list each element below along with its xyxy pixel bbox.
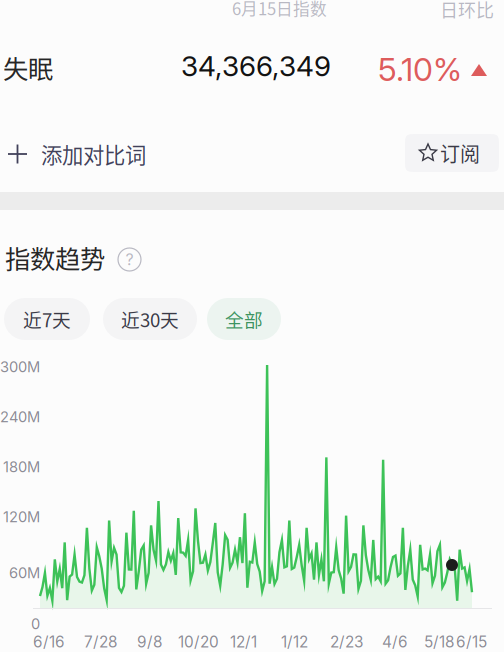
- staticText: 2/23: [330, 633, 363, 651]
- staticText: 180M: [3, 458, 40, 476]
- staticText: 4/6: [382, 633, 408, 651]
- staticText: 34,366,349: [181, 49, 331, 83]
- button[interactable]: 全部: [207, 298, 281, 340]
- staticText: 300M: [0, 358, 40, 376]
- staticText: 添加对比词: [41, 139, 146, 169]
- button[interactable]: What is the index trend: [118, 248, 141, 271]
- staticText: 失眠: [3, 49, 53, 86]
- staticText: 全部: [225, 305, 263, 332]
- staticText: 订阅: [440, 138, 480, 167]
- staticText: 日环比: [440, 0, 494, 22]
- staticText: 5.10%: [378, 50, 462, 89]
- button[interactable]: 近7天: [4, 298, 90, 340]
- staticText: 7/28: [84, 633, 117, 651]
- staticText: 6/15: [456, 633, 487, 651]
- staticText: 120M: [3, 508, 40, 526]
- staticText: 5/18: [424, 633, 454, 651]
- staticText: 6月15日指数: [232, 0, 327, 20]
- staticText: 近7天: [23, 305, 71, 332]
- button[interactable]: 订阅: [405, 134, 499, 172]
- staticText: 10/20: [178, 633, 219, 651]
- staticText: 12/1: [230, 633, 257, 651]
- staticText: 6/16: [33, 633, 65, 651]
- staticText: 9/8: [137, 633, 162, 651]
- staticText: 近30天: [121, 305, 179, 332]
- staticText: 1/12: [281, 633, 308, 651]
- staticText: 0: [31, 615, 40, 633]
- button[interactable]: 添加对比词: [0, 134, 160, 174]
- button[interactable]: 近30天: [103, 298, 197, 340]
- staticText: ?: [125, 250, 133, 269]
- staticText: 指数趋势: [5, 239, 105, 276]
- staticText: 60M: [9, 564, 40, 582]
- staticText: 240M: [0, 408, 40, 426]
